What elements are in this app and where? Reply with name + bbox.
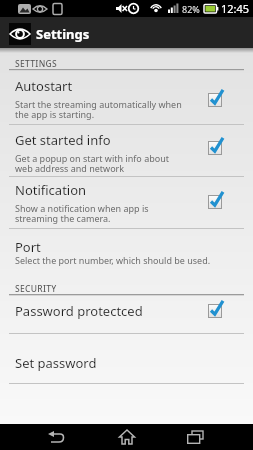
staticText: the app is starting. — [15, 108, 95, 120]
staticText: web address and network — [15, 162, 125, 174]
button[interactable]: Get started info — [0, 125, 253, 176]
staticText: Set password — [15, 354, 97, 372]
staticText: 82% — [182, 3, 200, 15]
button[interactable] — [36, 424, 76, 450]
staticText: Password protectced — [15, 302, 143, 320]
staticText: SECURITY — [15, 283, 57, 295]
button[interactable]: Settings — [0, 17, 253, 48]
staticText: Get a popup on start with info about — [15, 152, 169, 164]
staticText: Port — [15, 238, 41, 256]
staticText: Select the port number, which should be … — [15, 254, 211, 266]
staticText: Start the streaming automatically when — [15, 98, 182, 110]
button[interactable]: Password protectced — [0, 292, 253, 336]
button[interactable]: Notification — [0, 177, 253, 228]
staticText: Notification — [15, 181, 87, 199]
staticText: Show a notification when app is — [15, 202, 149, 214]
staticText: SETTINGS — [15, 58, 57, 70]
button[interactable]: Set password — [0, 334, 253, 383]
button[interactable] — [175, 424, 215, 450]
staticText: streaming the camera. — [15, 212, 111, 224]
button[interactable] — [107, 424, 147, 450]
staticText: 12:45 — [221, 1, 250, 16]
staticText: Autostart — [15, 77, 73, 95]
staticText: Settings — [36, 25, 90, 43]
button[interactable]: Port — [0, 229, 253, 274]
button[interactable]: Autostart — [0, 71, 253, 124]
staticText: Get started info — [15, 131, 111, 149]
